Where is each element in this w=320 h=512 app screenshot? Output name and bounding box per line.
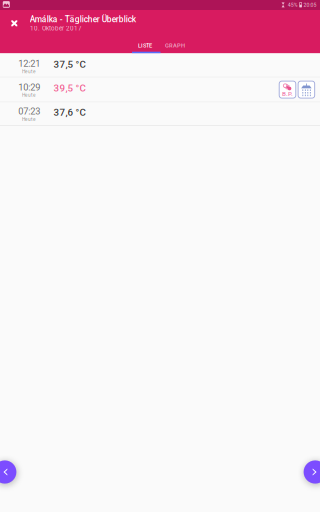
staticText: Heute <box>22 92 36 98</box>
staticText: 45% <box>288 2 298 8</box>
button[interactable]: B.P. <box>279 81 296 98</box>
button[interactable]: GRAPH <box>160 36 190 54</box>
staticText: Amálka - Täglicher Überblick <box>30 14 136 24</box>
staticText: GRAPH <box>165 42 185 49</box>
button[interactable]: 10:29 <box>0 77 320 102</box>
button[interactable]: LISTE <box>130 36 160 54</box>
staticText: 20:05 <box>304 2 317 8</box>
staticText: Heute <box>22 69 36 74</box>
staticText: 37,5 °C <box>54 59 86 70</box>
staticText: LISTE <box>138 42 152 49</box>
staticText: 12:21 <box>18 58 40 69</box>
staticText: Heute <box>22 117 36 122</box>
staticText: 39,5 °C <box>54 82 86 94</box>
staticText: 07:23 <box>18 106 40 117</box>
button[interactable]: 07:23 <box>0 102 320 126</box>
staticText: 10. Oktober 2017 <box>30 25 82 32</box>
button[interactable]: 12:21 <box>0 53 320 77</box>
button[interactable]: Next day <box>297 460 320 484</box>
staticText: B.P. <box>282 90 293 98</box>
button[interactable]: Close <box>3 12 25 34</box>
button[interactable] <box>298 81 315 98</box>
button[interactable]: Previous day <box>0 460 23 484</box>
staticText: 10:29 <box>18 82 40 93</box>
staticText: 37,6 °C <box>54 107 86 118</box>
